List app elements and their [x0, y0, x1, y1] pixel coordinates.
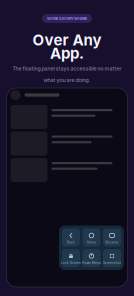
button[interactable]: Back: [62, 228, 80, 246]
staticText: Power Menu: [82, 261, 101, 265]
button[interactable]: Recents: [103, 228, 121, 246]
staticText: Home: [87, 241, 96, 244]
staticText: Back: [67, 241, 75, 244]
staticText: Over Any: [32, 31, 101, 49]
button[interactable]: Lock Screen: [62, 249, 80, 267]
staticText: Lock Screen: [61, 261, 81, 265]
staticText: Recents: [105, 241, 118, 244]
staticText: what you are doing.: [43, 77, 90, 83]
staticText: WORKS EVERYWHERE: [47, 16, 87, 21]
staticText: App.: [50, 44, 84, 62]
staticText: Screenshot: [103, 261, 121, 265]
button[interactable]: Screenshot: [103, 249, 121, 267]
button[interactable]: Home: [82, 228, 100, 246]
staticText: The floating panel stays accessible no m…: [12, 65, 121, 72]
button[interactable]: Power Menu: [82, 249, 100, 267]
